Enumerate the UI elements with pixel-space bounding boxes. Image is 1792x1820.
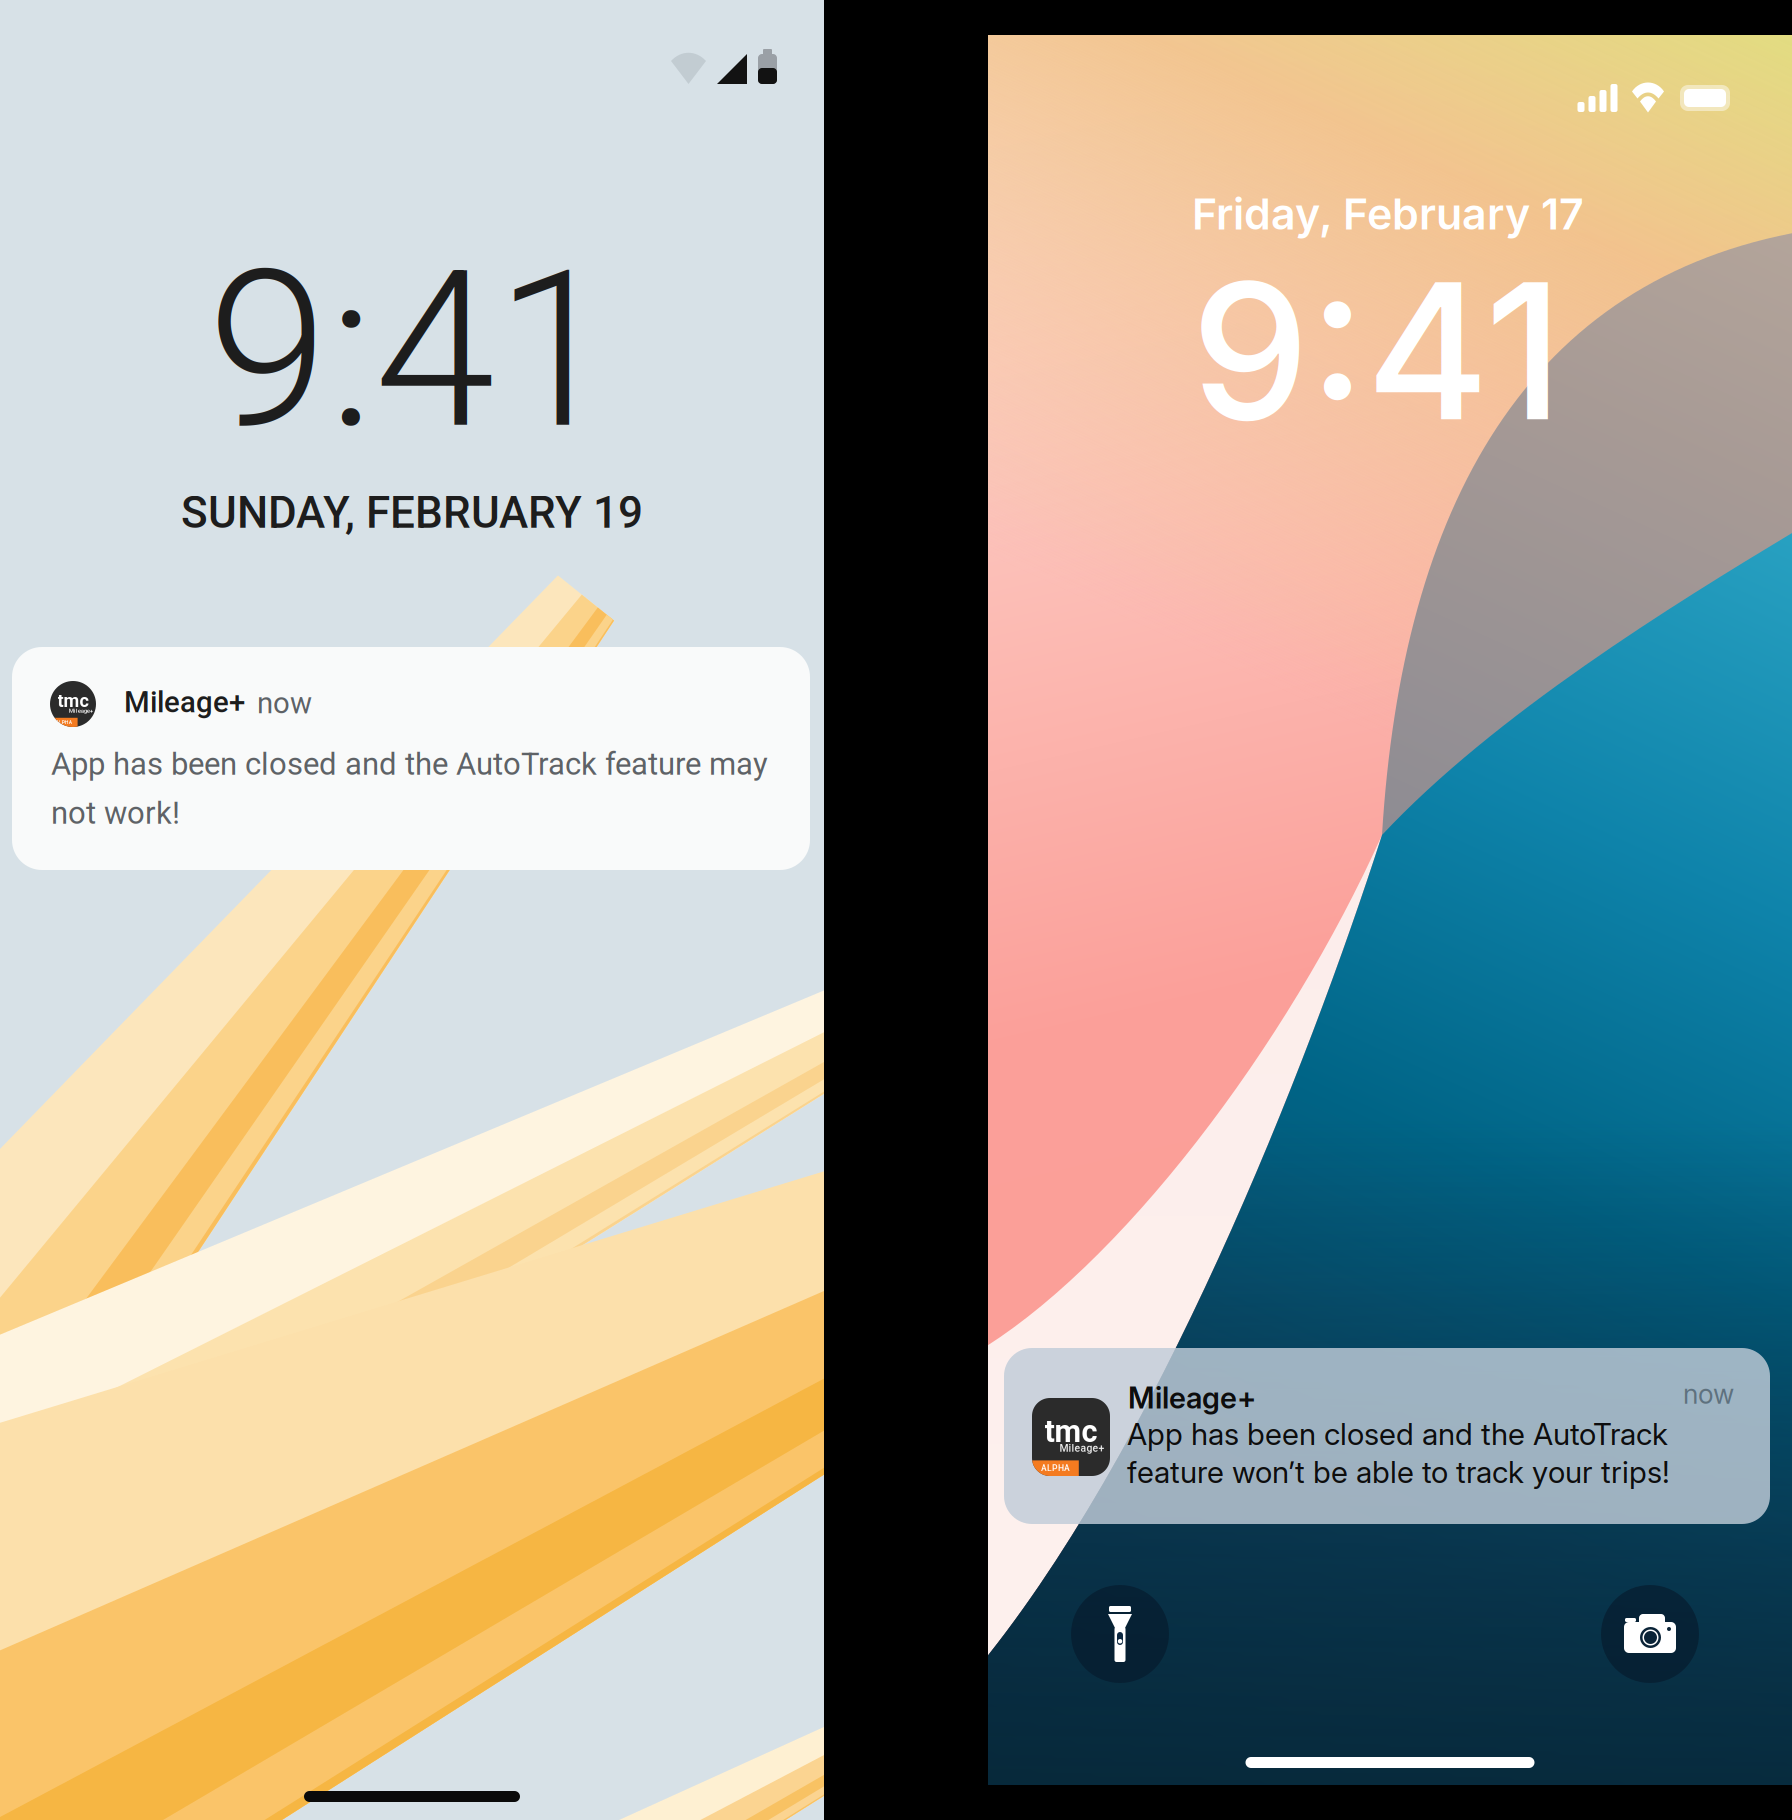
button[interactable]: Flashlight <box>1071 1585 1169 1683</box>
staticText: Mileage+ <box>124 685 245 719</box>
staticText: Mileage+ <box>1128 1380 1256 1415</box>
staticText: App has been closed and the AutoTrack <box>1127 1416 1668 1452</box>
staticText: App has been closed and the AutoTrack fe… <box>51 746 768 782</box>
staticText: Mileage+ <box>1059 1442 1104 1454</box>
staticText: ALPHA <box>1041 1463 1070 1473</box>
staticText: 9:41 <box>1191 237 1563 464</box>
staticText: tmc <box>57 690 88 711</box>
staticText: Friday, February 17 <box>1192 188 1584 240</box>
staticText: now <box>1683 1378 1734 1410</box>
button[interactable]: Camera <box>1601 1585 1699 1683</box>
button[interactable]: tmc <box>1004 1348 1770 1524</box>
button[interactable]: tmc <box>12 647 810 870</box>
staticText: 9:41 <box>207 223 616 478</box>
staticText: ALPHA <box>56 719 72 725</box>
staticText: feature won’t be able to track your trip… <box>1127 1454 1670 1490</box>
staticText: now <box>257 686 312 720</box>
staticText: Mileage+ <box>69 707 93 714</box>
staticText: tmc <box>1044 1414 1097 1450</box>
staticText: SUNDAY, FEBRUARY 19 <box>181 487 643 539</box>
staticText: not work! <box>51 795 180 831</box>
